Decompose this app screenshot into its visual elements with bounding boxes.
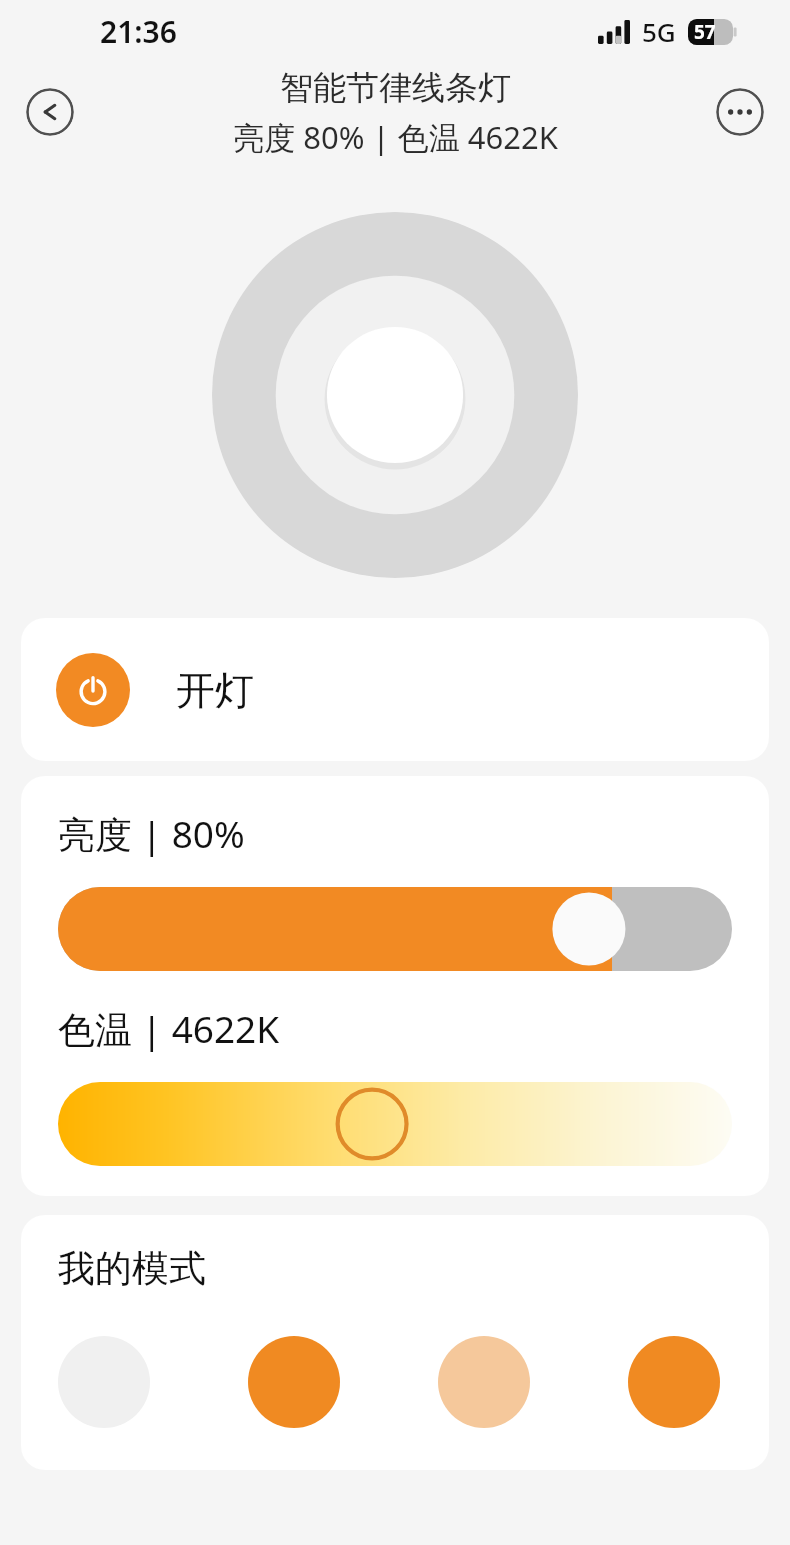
staticText: 智能节律线条灯 [280, 67, 511, 109]
button[interactable]: 开灯 [21, 618, 769, 761]
button[interactable]: More options [716, 88, 764, 136]
staticText: 亮度 80% | 色温 4622K [233, 116, 558, 158]
staticText: 21:36 [100, 11, 177, 52]
staticText: 我的模式 [58, 1245, 206, 1292]
staticText: 色温 | 4622K [58, 1003, 280, 1054]
staticText: 开灯 [176, 666, 254, 715]
staticText: 亮度 | 80% [58, 808, 245, 859]
button[interactable] [58, 1082, 732, 1166]
button[interactable]: Mode 1 [58, 1336, 150, 1428]
button[interactable]: Mode 2 [248, 1336, 340, 1428]
button[interactable] [58, 887, 732, 971]
button[interactable]: Back [26, 88, 74, 136]
button[interactable]: Mode 4 [628, 1336, 720, 1428]
staticText: 57 [694, 19, 716, 45]
button[interactable]: Mode 3 [438, 1336, 530, 1428]
staticText: 5G [642, 14, 676, 49]
